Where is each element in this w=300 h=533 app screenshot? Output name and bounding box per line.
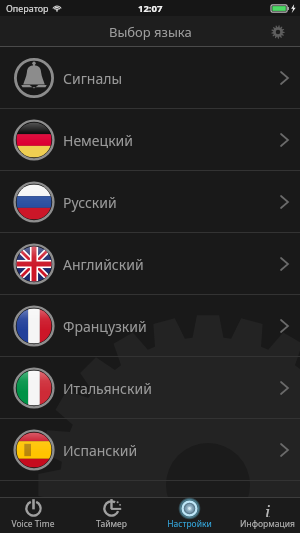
button[interactable]: Сигналы xyxy=(0,47,300,109)
button[interactable]: Настройки xyxy=(156,497,222,533)
staticText: 12:07 xyxy=(138,2,163,15)
staticText: Испанский xyxy=(63,441,138,460)
staticText: Выбор языка xyxy=(109,23,192,41)
button[interactable]: Voice Time xyxy=(0,497,66,533)
staticText: Voice Time xyxy=(11,518,55,530)
staticText: Немецкий xyxy=(63,131,133,150)
staticText: Информация xyxy=(240,518,295,530)
staticText: Итальянский xyxy=(63,379,152,398)
staticText: i xyxy=(265,500,271,517)
button[interactable]: Английский xyxy=(0,233,300,295)
staticText: Сигналы xyxy=(63,69,123,88)
button[interactable]: Итальянский xyxy=(0,357,300,419)
staticText: Таймер xyxy=(96,518,127,530)
button[interactable]: Немецкий xyxy=(0,109,300,171)
button[interactable]: i xyxy=(234,497,300,533)
staticText: Настройки xyxy=(167,518,212,530)
button[interactable]: Русский xyxy=(0,171,300,233)
button[interactable]: Испанский xyxy=(0,419,300,481)
button[interactable]: Французкий xyxy=(0,295,300,357)
staticText: Английский xyxy=(63,255,144,274)
staticText: Французкий xyxy=(63,317,147,336)
button[interactable]: Settings xyxy=(270,24,286,40)
staticText: Оператор xyxy=(6,2,49,14)
staticText: Русский xyxy=(63,193,117,212)
button[interactable]: Таймер xyxy=(78,497,144,533)
